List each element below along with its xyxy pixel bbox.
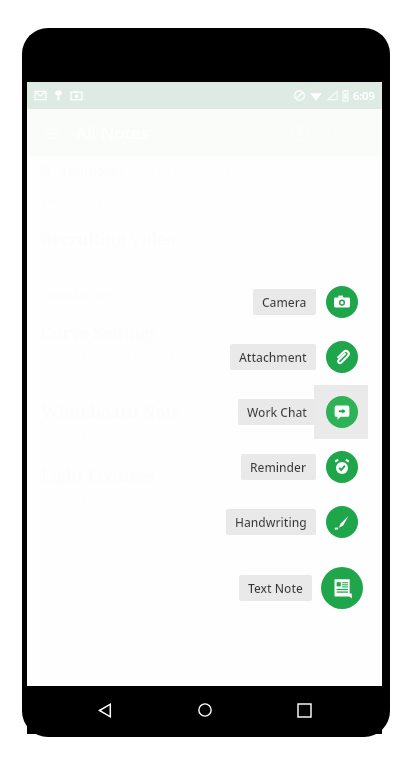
staticText: Attachment [239,349,307,365]
button[interactable]: Curve Settings [27,311,382,390]
other: Work Chat [326,396,358,428]
staticText: 6:09 [353,88,375,103]
other: Handwriting [326,506,358,538]
staticText: 2/24/2015 Cross Process settings: RGB [41,347,239,362]
staticText: Text Note [248,580,303,596]
button[interactable]: Handwriting [27,506,358,538]
staticText: Camera [262,294,307,310]
button[interactable]: Whiteboard Note [27,390,382,454]
button[interactable]: Recent apps [282,688,326,732]
button[interactable]: Home [183,688,227,732]
staticText: Work Chat [247,404,307,420]
staticText: Handwriting [235,514,307,530]
other: Reminder [326,451,358,483]
button[interactable]: Back [83,688,127,732]
button[interactable]: Light Fixtures [27,454,382,518]
button[interactable]: Camera [27,286,358,318]
button[interactable]: Text Note [27,567,363,609]
button[interactable]: Attachment [27,341,358,373]
button[interactable]: Reminder [27,451,358,483]
other: Text Note [321,567,363,609]
other: Camera [326,286,358,318]
button[interactable]: Work Chat [27,396,358,428]
staticText: Reminder [250,459,307,475]
other: Attachment [326,341,358,373]
